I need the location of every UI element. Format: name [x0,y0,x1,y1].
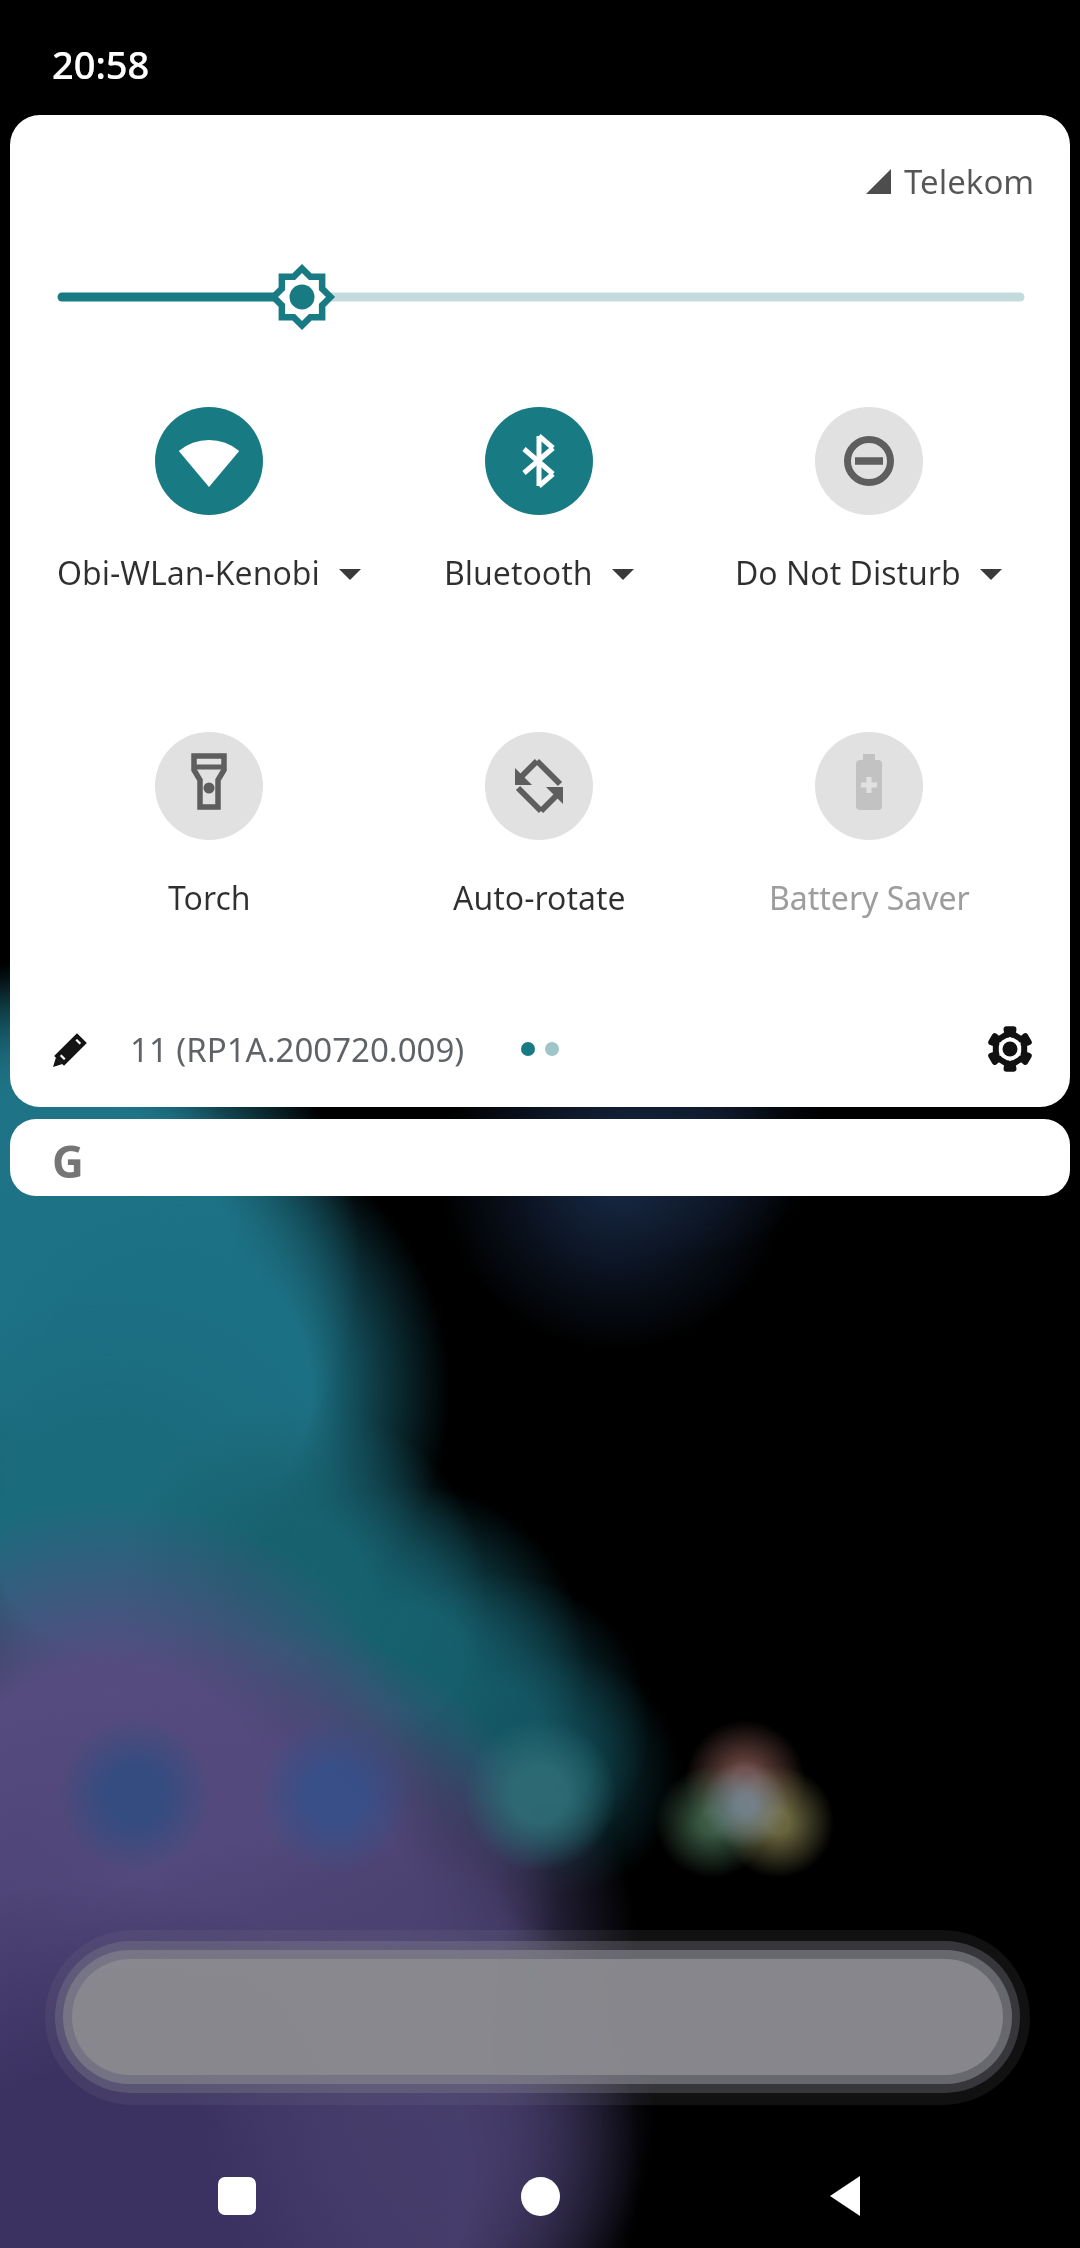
button[interactable]: Auto-rotate [379,732,699,920]
button[interactable]: Bluetooth [379,407,699,595]
staticText: Do Not Disturb [735,551,961,595]
button[interactable] [509,2165,571,2227]
staticText: Telekom [904,159,1035,204]
button[interactable] [206,2165,268,2227]
button[interactable]: Do Not Disturb [709,407,1029,595]
staticText: 20:58 [52,38,150,90]
staticText: 11 (RP1A.200720.009) [130,1027,465,1072]
staticText: Obi-WLan-Kenobi [57,551,320,595]
button[interactable] [38,1017,102,1081]
staticText: Torch [168,876,251,920]
staticText: Battery Saver [769,876,970,920]
staticText: Bluetooth [444,551,593,595]
staticText: Auto-rotate [453,876,626,920]
staticText: G [52,1131,84,1191]
button[interactable] [812,2165,874,2227]
button[interactable]: Battery Saver [709,732,1029,920]
button[interactable] [978,1017,1042,1081]
button[interactable]: G [10,1119,1070,1196]
button[interactable]: Obi-WLan-Kenobi [49,407,369,595]
button[interactable]: Torch [49,732,369,920]
